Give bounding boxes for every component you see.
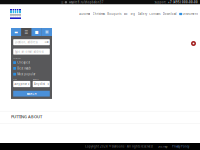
button[interactable]: Best match <box>13 67 50 70</box>
staticText: Gallery <box>138 12 147 16</box>
button[interactable]: Most popular <box>13 72 50 76</box>
button[interactable]: Settings <box>42 28 52 36</box>
staticText: Type an email address <box>15 50 44 53</box>
staticText: SEARCH <box>26 92 36 95</box>
staticText: +7 (495) 000-00-00 <box>168 0 198 4</box>
staticText: Eco <box>124 12 128 16</box>
button[interactable]: List view <box>11 28 21 36</box>
button[interactable]: Download <box>163 12 177 16</box>
button[interactable]: Cheapest <box>13 61 50 64</box>
button[interactable]: Any dist <box>33 81 50 87</box>
button[interactable]: Home <box>10 9 21 19</box>
staticText: Most popular <box>17 72 35 76</box>
button[interactable]: Record <box>191 41 196 46</box>
staticText: ▬ <box>14 30 18 34</box>
staticText: ☰ <box>61 1 63 4</box>
staticText: Automat <box>79 12 90 16</box>
staticText: Support: <box>154 0 166 4</box>
button[interactable]: Christmas <box>93 12 105 16</box>
staticText: Best match <box>17 67 31 70</box>
staticText: Download <box>163 12 177 16</box>
staticText: ☰ <box>24 30 28 34</box>
staticText: Christmas <box>93 12 105 16</box>
button[interactable]: Eco <box>124 12 128 16</box>
staticText: Any dist <box>34 82 45 86</box>
button[interactable]: Location, address <box>13 39 50 45</box>
button[interactable]: Teg <box>130 12 135 16</box>
staticText: ▾ <box>48 82 49 85</box>
button[interactable]: Filters <box>21 28 31 36</box>
button[interactable]: Gallery <box>138 12 147 16</box>
button[interactable]: Type an email address <box>13 49 50 55</box>
staticText: Price <box>13 79 17 80</box>
staticText: Sort order <box>13 58 21 59</box>
staticText: Sitemap <box>158 145 168 148</box>
staticText: PUTTING ABOUT <box>11 114 42 119</box>
staticText: Privacy Policy <box>172 145 189 148</box>
button[interactable]: Bouquets <box>107 12 121 16</box>
button[interactable]: Instrument <box>179 12 198 16</box>
staticText: ■ <box>35 30 39 34</box>
staticText: Distance <box>33 79 39 80</box>
staticText: ⌘ <box>45 30 49 34</box>
button[interactable]: SEARCH <box>13 91 50 96</box>
staticText: Contacts <box>149 12 160 16</box>
staticText: waysite8.ru/shopbalon37 <box>69 0 104 4</box>
staticText: Instrument <box>183 12 198 16</box>
staticText: ⊙✖ <box>44 41 48 44</box>
staticText: ▾ <box>28 82 29 85</box>
staticText: Teg <box>130 12 135 16</box>
button[interactable]: Contacts <box>149 12 160 16</box>
button[interactable]: Map view <box>31 28 42 36</box>
button[interactable]: Any price <box>13 81 30 87</box>
button[interactable]: Automat <box>79 12 90 16</box>
staticText: Cheapest <box>17 61 30 64</box>
staticText: Bouquets <box>107 12 121 16</box>
staticText: Location, address <box>15 40 38 44</box>
staticText: Any price <box>14 82 27 86</box>
staticText: Copyright 2024 © Balloons · All rights r… <box>85 145 153 148</box>
